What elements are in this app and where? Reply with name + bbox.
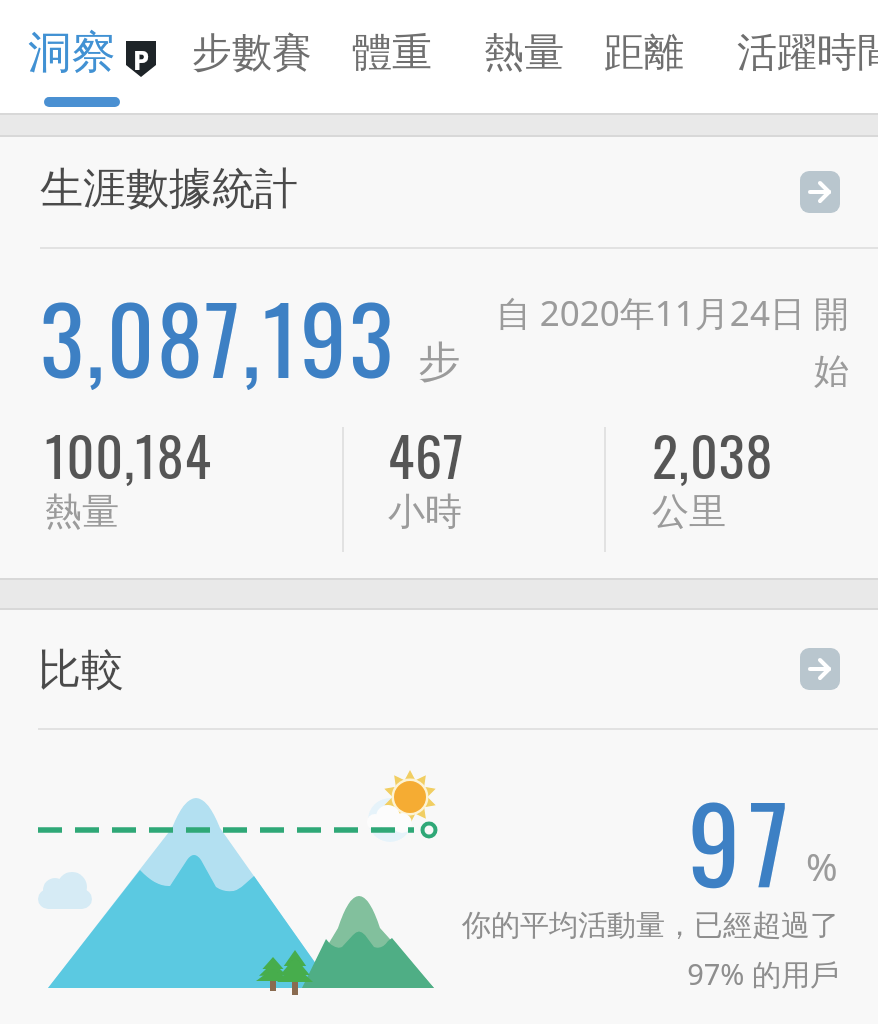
staticText: 生涯數據統計	[40, 162, 298, 216]
staticText: 熱量	[484, 27, 564, 77]
staticText: P	[133, 42, 150, 77]
button[interactable]: 步數賽	[192, 0, 312, 104]
button[interactable]	[800, 648, 840, 690]
staticText: %	[806, 840, 838, 892]
button[interactable]: 生涯數據統計	[40, 162, 298, 216]
staticText: 步	[418, 336, 460, 389]
button[interactable]: 洞察	[28, 0, 116, 104]
staticText: 公里	[652, 488, 726, 535]
button[interactable]: 活躍時間	[737, 0, 878, 104]
staticText: 步數賽	[192, 27, 312, 77]
staticText: 2,038	[652, 415, 774, 495]
staticText: 距離	[604, 27, 684, 77]
staticText: 97	[688, 763, 800, 917]
staticText: 你的平均活動量，已經超過了 97% 的用戶	[419, 907, 839, 993]
staticText: 467	[388, 415, 465, 495]
staticText: 3,087,193	[40, 268, 396, 404]
button[interactable]: 距離	[604, 0, 684, 104]
staticText: 小時	[388, 488, 462, 535]
button[interactable]: 體重	[352, 0, 432, 104]
staticText: 自 2020年11月24日 開 始	[449, 289, 849, 393]
staticText: 活躍時間	[737, 27, 878, 77]
button[interactable]: 比較	[38, 643, 124, 697]
staticText: 洞察	[28, 25, 116, 80]
staticText: 熱量	[45, 488, 119, 535]
button[interactable]	[800, 171, 840, 213]
staticText: 體重	[352, 27, 432, 77]
staticText: 100,184	[45, 415, 212, 495]
staticText: 比較	[38, 643, 124, 697]
button[interactable]: 熱量	[484, 0, 564, 104]
